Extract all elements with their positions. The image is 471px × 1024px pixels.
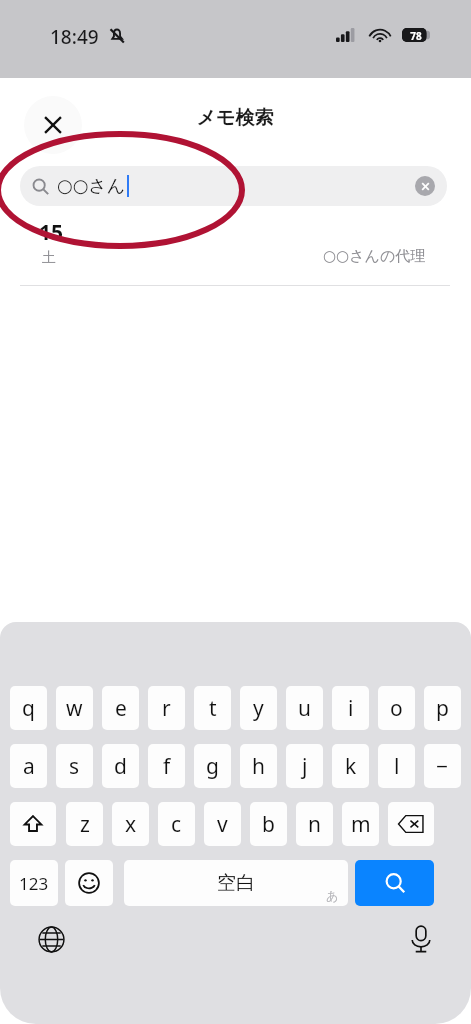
staticText: b <box>262 810 275 839</box>
button[interactable]: 空白 <box>124 860 348 906</box>
button[interactable]: r <box>148 686 185 730</box>
button[interactable]: o <box>378 686 415 730</box>
button[interactable]: k <box>332 744 369 788</box>
staticText: r <box>162 694 171 723</box>
staticText: z <box>80 810 90 839</box>
button[interactable]: 検索 <box>355 860 434 906</box>
button[interactable]: z <box>66 802 103 846</box>
button[interactable]: c <box>158 802 195 846</box>
staticText: u <box>298 694 311 723</box>
button[interactable]: j <box>286 744 323 788</box>
staticText: a <box>23 752 35 781</box>
button[interactable]: w <box>56 686 93 730</box>
staticText: h <box>252 752 265 781</box>
staticText: s <box>69 752 80 781</box>
staticText: 18:49 <box>50 24 99 50</box>
button[interactable]: q <box>10 686 47 730</box>
button[interactable]: a <box>10 744 47 788</box>
button[interactable]: l <box>378 744 415 788</box>
button[interactable]: 閉じる <box>24 96 82 154</box>
button[interactable]: b <box>250 802 287 846</box>
button[interactable]: f <box>148 744 185 788</box>
button[interactable]: 音声入力 <box>400 918 442 960</box>
button[interactable]: Shift <box>10 802 56 846</box>
staticText: l <box>394 752 400 781</box>
staticText: − <box>436 752 449 781</box>
button[interactable]: x <box>112 802 149 846</box>
button[interactable]: v <box>204 802 241 846</box>
staticText: y <box>253 694 264 723</box>
staticText: ○○さん <box>57 175 126 198</box>
staticText: w <box>66 694 83 723</box>
staticText: 土 <box>42 249 56 267</box>
staticText: x <box>125 810 137 839</box>
staticText: g <box>206 752 219 781</box>
staticText: e <box>115 694 127 723</box>
staticText: t <box>209 694 217 723</box>
staticText: q <box>22 694 35 723</box>
staticText: d <box>114 752 127 781</box>
button[interactable]: t <box>194 686 231 730</box>
staticText: 空白 <box>217 871 255 895</box>
button[interactable]: Backspace <box>388 802 434 846</box>
button[interactable]: s <box>56 744 93 788</box>
button[interactable]: 言語切替 <box>30 918 72 960</box>
staticText: p <box>436 694 449 723</box>
button[interactable]: − <box>424 744 461 788</box>
button[interactable]: h <box>240 744 277 788</box>
button[interactable]: p <box>424 686 461 730</box>
staticText: 15 <box>39 218 64 247</box>
staticText: k <box>345 752 357 781</box>
staticText: ○○さんの代理 <box>323 247 426 266</box>
staticText: メモ検索 <box>8 106 462 130</box>
button[interactable]: 123 <box>10 860 58 906</box>
button[interactable]: 15 <box>8 216 462 286</box>
staticText: o <box>390 694 403 723</box>
button[interactable]: i <box>332 686 369 730</box>
button[interactable]: y <box>240 686 277 730</box>
button[interactable]: m <box>342 802 379 846</box>
button[interactable]: e <box>102 686 139 730</box>
button[interactable]: g <box>194 744 231 788</box>
button[interactable]: 絵文字 <box>65 860 113 906</box>
staticText: j <box>302 752 308 781</box>
staticText: f <box>163 752 171 781</box>
staticText: v <box>217 810 228 839</box>
staticText: あ <box>326 888 339 903</box>
staticText: 78 <box>404 29 428 43</box>
button[interactable]: n <box>296 802 333 846</box>
staticText: 123 <box>19 872 49 895</box>
button[interactable]: d <box>102 744 139 788</box>
staticText: i <box>348 694 354 723</box>
staticText: m <box>351 810 371 839</box>
staticText: n <box>308 810 321 839</box>
button[interactable]: クリア <box>415 176 435 196</box>
staticText: c <box>171 810 182 839</box>
button[interactable]: ○○さん <box>20 166 447 206</box>
button[interactable]: u <box>286 686 323 730</box>
